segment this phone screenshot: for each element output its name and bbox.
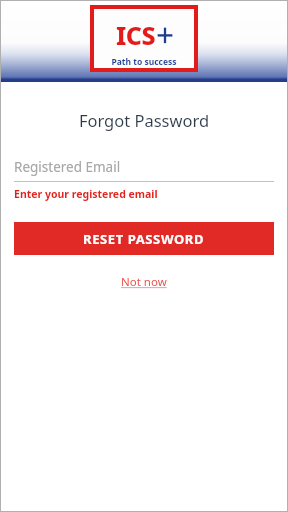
button[interactable]: RESET PASSWORD: [14, 222, 274, 255]
staticText: Not now: [121, 274, 167, 290]
button[interactable]: Not now: [117, 272, 171, 292]
staticText: ICS: [116, 18, 156, 52]
staticText: Path to success: [111, 56, 177, 68]
staticText: RESET PASSWORD: [83, 230, 205, 248]
button[interactable]: Registered Email: [14, 155, 274, 179]
staticText: Registered Email: [14, 158, 121, 176]
staticText: Enter your registered email: [14, 187, 158, 201]
staticText: Forgot Password: [14, 109, 274, 131]
